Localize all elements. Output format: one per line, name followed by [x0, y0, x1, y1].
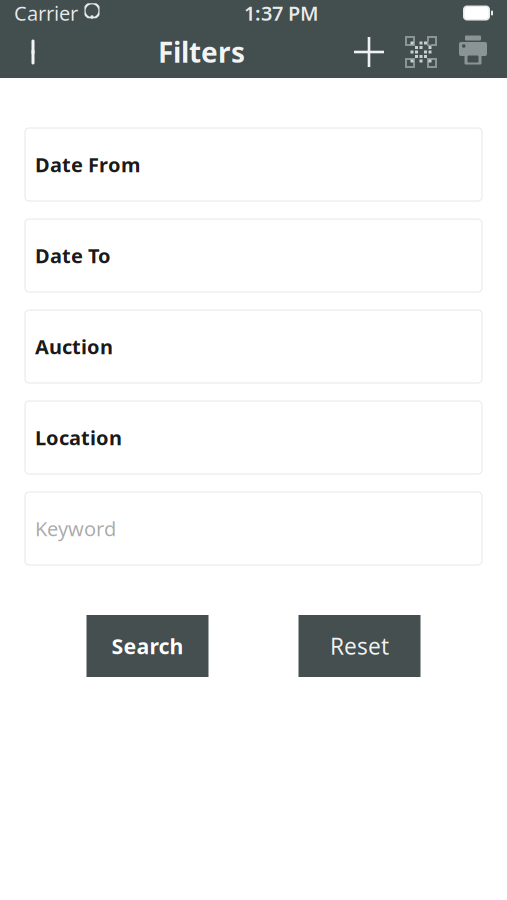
staticText: Filters — [158, 33, 245, 71]
staticText: 1:37 PM — [244, 0, 319, 26]
button[interactable]: Print — [447, 26, 499, 78]
button[interactable]: Keyword — [25, 492, 482, 565]
button[interactable]: Add — [343, 26, 395, 78]
button[interactable]: Auction — [25, 310, 482, 383]
button[interactable]: Location — [25, 401, 482, 474]
button[interactable]: Date From — [25, 128, 482, 201]
staticText: Date From — [35, 151, 141, 178]
staticText: Location — [35, 424, 122, 451]
staticText: Carrier — [14, 0, 78, 26]
staticText: Keyword — [35, 515, 116, 542]
button[interactable]: Scan QR code — [395, 26, 447, 78]
button[interactable]: Date To — [25, 219, 482, 292]
staticText: Auction — [35, 333, 113, 360]
staticText: Search — [111, 632, 183, 660]
staticText: Date To — [35, 242, 111, 269]
button[interactable]: Reset — [298, 615, 420, 677]
button[interactable]: Back — [6, 26, 60, 78]
button[interactable]: Search — [86, 615, 208, 677]
staticText: Reset — [330, 631, 389, 661]
